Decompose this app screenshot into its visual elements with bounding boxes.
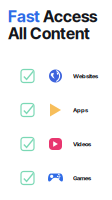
staticText: Access	[40, 7, 97, 26]
staticText: Apps	[73, 106, 88, 114]
staticText: Games	[73, 174, 91, 182]
staticText: Videos	[73, 140, 91, 148]
button[interactable]: Games	[0, 161, 112, 195]
staticText: Fast	[8, 7, 40, 26]
staticText: All Content	[8, 24, 90, 43]
button[interactable]: Websites	[0, 59, 112, 93]
button[interactable]: Videos	[0, 127, 112, 161]
staticText: Websites	[73, 72, 98, 80]
button[interactable]: Apps	[0, 93, 112, 127]
